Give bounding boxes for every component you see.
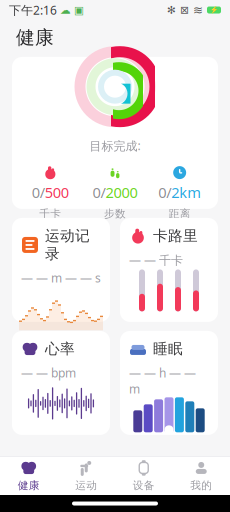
staticText: — — 千卡 bbox=[129, 252, 183, 268]
staticText: 健康 bbox=[18, 479, 40, 492]
staticText: ⊠ bbox=[180, 4, 189, 16]
staticText: 睡眠 bbox=[153, 340, 183, 358]
staticText: ✻ bbox=[167, 4, 176, 16]
staticText: 2000 bbox=[105, 183, 137, 202]
staticText: ⚡ bbox=[210, 6, 218, 14]
staticText: 0/ bbox=[92, 183, 105, 202]
staticText: 千卡 bbox=[39, 207, 61, 220]
staticText: ☁ ▣ bbox=[57, 4, 84, 16]
staticText: 卡路里 bbox=[153, 227, 198, 245]
staticText: 运动记录 bbox=[45, 227, 90, 263]
staticText: 心率 bbox=[45, 340, 75, 358]
staticText: 步数 bbox=[104, 207, 126, 220]
staticText: 健康 bbox=[16, 26, 54, 49]
staticText: 运动 bbox=[75, 479, 97, 492]
staticText: 2km bbox=[171, 183, 201, 202]
staticText: 设备 bbox=[133, 479, 155, 492]
staticText: 0/ bbox=[158, 183, 171, 202]
staticText: 距离 bbox=[169, 207, 191, 220]
button[interactable]: 卡路里 bbox=[120, 218, 218, 322]
staticText: ≋ bbox=[193, 3, 203, 17]
button[interactable]: 我的 bbox=[172, 454, 230, 498]
staticText: — — bpm bbox=[21, 365, 76, 381]
button[interactable]: 运动记录 bbox=[12, 218, 110, 322]
staticText: 我的 bbox=[190, 479, 212, 492]
staticText: 500 bbox=[45, 183, 69, 202]
button[interactable]: 目标完成: bbox=[12, 57, 218, 209]
staticText: 下午2:16 bbox=[9, 2, 57, 18]
staticText: — — m — — s bbox=[21, 270, 101, 286]
button[interactable]: 设备 bbox=[115, 454, 172, 498]
button[interactable]: 心率 bbox=[12, 331, 110, 435]
staticText: 目标完成: bbox=[89, 138, 140, 154]
button[interactable]: 运动 bbox=[57, 454, 115, 498]
staticText: 0/ bbox=[32, 183, 45, 202]
button[interactable]: 健康 bbox=[0, 454, 57, 498]
staticText: — — h — — m bbox=[129, 365, 196, 397]
button[interactable]: 睡眠 bbox=[120, 331, 218, 435]
